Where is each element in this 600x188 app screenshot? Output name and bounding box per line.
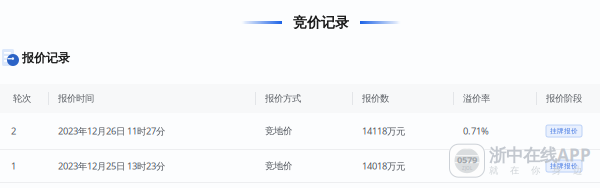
staticText: 报价数 (362, 93, 389, 104)
staticText: 2 (11, 125, 16, 137)
staticText: 竞地价 (265, 125, 292, 137)
staticText: 报价记录 (22, 50, 70, 65)
staticText: 挂牌报价 (550, 162, 578, 170)
staticText: 挂牌报价 (550, 127, 578, 135)
staticText: 竞价记录 (293, 14, 349, 31)
staticText: 2023年12月26日 11时27分 (58, 125, 165, 137)
button[interactable]: 挂牌报价 (546, 125, 582, 137)
staticText: 14018万元 (362, 160, 405, 172)
staticText: 溢价率 (463, 93, 490, 104)
staticText: 14118万元 (362, 125, 405, 137)
staticText: 就 在 你 身 边 (489, 165, 582, 176)
staticText: 0.71% (463, 125, 489, 137)
staticText: 竞地价 (265, 160, 292, 172)
staticText: 报价方式 (265, 93, 301, 104)
staticText: 报价时间 (58, 93, 94, 104)
staticText: 浙中在线APP (489, 143, 591, 167)
staticText: 1 (11, 160, 16, 172)
staticText: ZJOL (462, 165, 472, 171)
button[interactable]: 挂牌报价 (546, 160, 582, 172)
staticText: 轮次 (13, 93, 31, 104)
staticText: 0579 (457, 153, 477, 166)
staticText: 2023年12月25日 13时23分 (58, 160, 165, 172)
staticText: 报价阶段 (546, 93, 582, 104)
